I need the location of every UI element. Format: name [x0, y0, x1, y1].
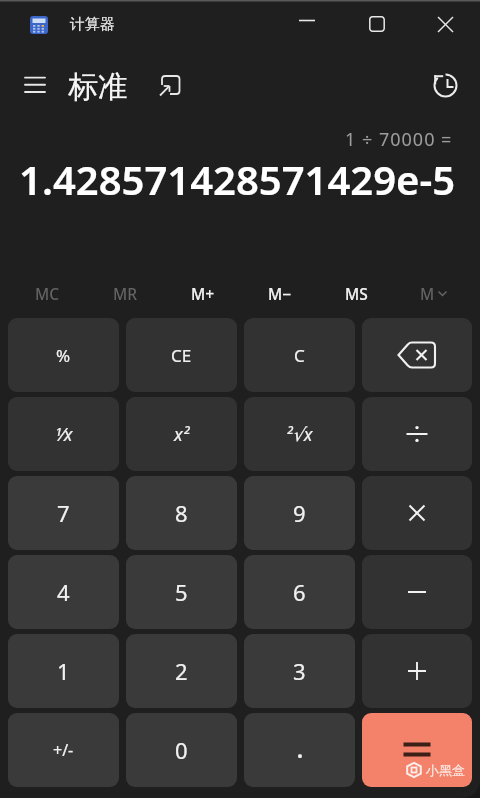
staticText: MC	[35, 283, 60, 304]
staticText: M−	[268, 283, 292, 304]
button[interactable]: MC	[8, 276, 86, 310]
staticText: M+	[191, 283, 215, 304]
button[interactable]	[342, 0, 411, 48]
button[interactable]: ²√x	[244, 397, 355, 471]
staticText: 5	[175, 577, 188, 607]
staticText: x²	[174, 422, 190, 447]
button[interactable]: +/-	[8, 713, 119, 787]
staticText: ⅟x	[55, 422, 73, 447]
button[interactable]	[273, 0, 342, 48]
button[interactable]: x²	[126, 397, 237, 471]
button[interactable]	[362, 555, 472, 629]
button[interactable]: 1	[8, 634, 119, 708]
button[interactable]: M+	[164, 276, 241, 310]
button[interactable]	[362, 634, 472, 708]
staticText: 小黑盒	[426, 762, 465, 778]
button[interactable]: M	[395, 276, 472, 310]
staticText: 计算器	[70, 15, 115, 34]
staticText: 标准	[68, 68, 128, 102]
staticText: 1 ÷ 70000 =	[345, 127, 453, 152]
button[interactable]: C	[244, 318, 355, 392]
button[interactable]: 4	[8, 555, 119, 629]
button[interactable]: 9	[244, 476, 355, 550]
button[interactable]: M−	[241, 276, 318, 310]
button[interactable]: 6	[244, 555, 355, 629]
button[interactable]: 0	[126, 713, 237, 787]
button[interactable]	[156, 72, 182, 98]
button[interactable]: 5	[126, 555, 237, 629]
button[interactable]	[362, 397, 472, 471]
button[interactable]	[362, 476, 472, 550]
button[interactable]	[24, 74, 46, 96]
button[interactable]: 8	[126, 476, 237, 550]
staticText: ²√x	[286, 422, 313, 447]
button[interactable]: 2	[126, 634, 237, 708]
button[interactable]	[411, 0, 480, 48]
staticText: 1	[57, 656, 70, 686]
staticText: M	[420, 283, 435, 304]
staticText: MS	[345, 283, 368, 304]
button[interactable]: ⅟x	[8, 397, 119, 471]
staticText: 6	[293, 577, 306, 607]
button[interactable]	[362, 318, 472, 392]
staticText: %	[56, 344, 71, 367]
button[interactable]: 7	[8, 476, 119, 550]
staticText: 3	[293, 656, 306, 686]
button[interactable]: CE	[126, 318, 237, 392]
staticText: CE	[171, 344, 192, 367]
staticText: MR	[113, 283, 138, 304]
button[interactable]	[430, 70, 460, 100]
staticText: 7	[57, 498, 70, 528]
staticText: 4	[57, 577, 70, 607]
staticText: +/-	[53, 739, 74, 761]
button[interactable]: %	[8, 318, 119, 392]
button[interactable]: MR	[86, 276, 164, 310]
button[interactable]: .	[244, 713, 355, 787]
staticText: 0	[175, 735, 188, 765]
staticText: 2	[175, 656, 188, 686]
staticText: .	[297, 736, 303, 765]
staticText: 8	[175, 498, 188, 528]
button[interactable]: MS	[318, 276, 395, 310]
button[interactable]: 3	[244, 634, 355, 708]
button[interactable]	[362, 713, 472, 787]
staticText: C	[294, 344, 305, 367]
staticText: 1.428571428571429e-5	[19, 152, 456, 206]
staticText: 9	[293, 498, 306, 528]
